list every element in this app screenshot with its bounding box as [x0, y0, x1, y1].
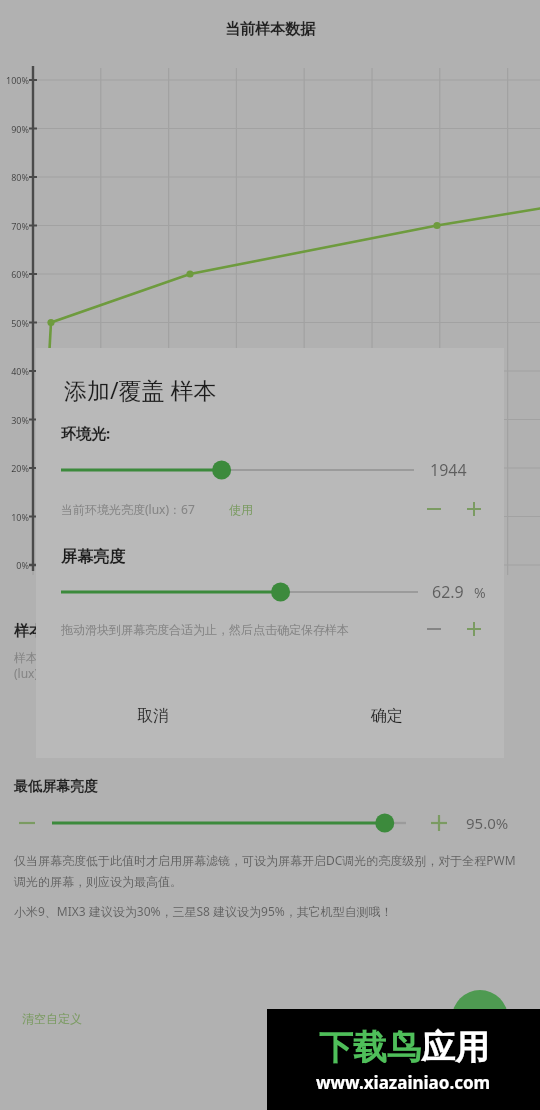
- staticText: (lux): [14, 665, 39, 681]
- staticText: 70%: [0, 220, 29, 232]
- button[interactable]: Increase screen brightness: [462, 617, 486, 641]
- staticText: 当前环境光亮度(lux)：67: [61, 501, 195, 517]
- staticText: 仅当屏幕亮度低于此值时才启用屏幕滤镜，可设为屏幕开启DC调光的亮度级别，对于全程…: [14, 852, 526, 889]
- button[interactable]: [61, 457, 414, 483]
- button[interactable]: 使用: [223, 498, 259, 521]
- staticText: 当前样本数据: [0, 20, 540, 39]
- staticText: 1944: [430, 459, 486, 481]
- button[interactable]: 确定: [270, 696, 504, 736]
- staticText: 下载鸟: [319, 1026, 421, 1069]
- button[interactable]: Decrease ambient light: [422, 497, 446, 521]
- staticText: 90%: [0, 123, 29, 135]
- button[interactable]: Increase minimum brightness: [426, 810, 452, 836]
- staticText: 应用: [421, 1026, 489, 1069]
- button[interactable]: Decrease minimum brightness: [14, 810, 40, 836]
- staticText: 小米9、MIX3 建议设为30%，三星S8 建议设为95%，其它机型自测哦！: [14, 903, 393, 919]
- button[interactable]: Decrease screen brightness: [422, 617, 446, 641]
- staticText: 60%: [0, 268, 29, 280]
- staticText: www.xiazainiao.com: [316, 1071, 491, 1094]
- staticText: 使用: [229, 502, 253, 517]
- button[interactable]: 取消: [36, 696, 270, 736]
- button[interactable]: Increase ambient light: [462, 497, 486, 521]
- staticText: 样本管理: [14, 622, 74, 641]
- staticText: 95.0%: [466, 813, 526, 833]
- staticText: 100%: [0, 74, 29, 86]
- button[interactable]: Add sample: [452, 990, 508, 1046]
- button[interactable]: [52, 808, 406, 838]
- staticText: 50%: [0, 317, 29, 329]
- button[interactable]: 清空自定义: [14, 1005, 90, 1032]
- staticText: 添加/覆盖 样本: [64, 374, 217, 405]
- staticText: 40%: [0, 365, 29, 377]
- staticText: 62.9: [432, 581, 468, 603]
- staticText: %: [474, 583, 486, 602]
- staticText: 清空自定义: [22, 1011, 82, 1026]
- staticText: 0%: [0, 559, 29, 571]
- staticText: 30%: [0, 414, 29, 426]
- staticText: 环境光:: [61, 423, 111, 443]
- staticText: 最低屏幕亮度: [14, 778, 98, 796]
- staticText: 样本数量：0: [14, 649, 81, 665]
- staticText: 拖动滑块到屏幕亮度合适为止，然后点击确定保存样本: [61, 622, 361, 637]
- button[interactable]: [61, 579, 418, 605]
- staticText: 取消: [137, 706, 169, 726]
- staticText: 20%: [0, 462, 29, 474]
- staticText: 80%: [0, 171, 29, 183]
- staticText: 屏幕亮度: [61, 547, 125, 567]
- staticText: 确定: [371, 706, 403, 726]
- staticText: 10%: [0, 511, 29, 523]
